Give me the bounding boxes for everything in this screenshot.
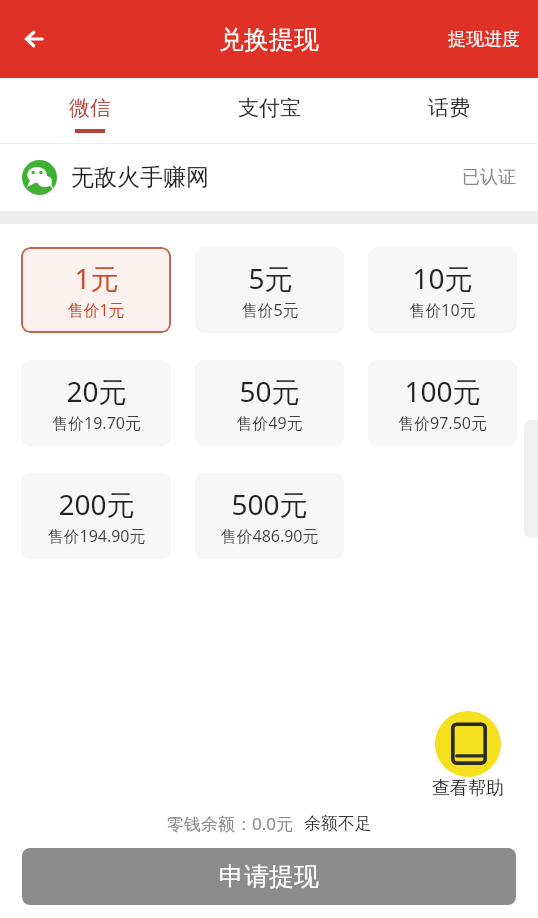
- staticText: 话费: [428, 95, 470, 121]
- button[interactable]: 查看帮助: [428, 707, 508, 804]
- button[interactable]: 1元: [21, 247, 171, 333]
- staticText: 余额不足: [304, 813, 372, 834]
- button[interactable]: 100元: [368, 360, 517, 446]
- staticText: 10元: [412, 259, 473, 297]
- staticText: 已认证: [462, 166, 516, 189]
- staticText: 5元: [248, 259, 293, 297]
- staticText: 申请提现: [219, 861, 319, 892]
- button[interactable]: 话费: [359, 78, 538, 143]
- staticText: 查看帮助: [432, 777, 504, 800]
- staticText: 提现进度: [448, 28, 520, 51]
- button[interactable]: 支付宝: [180, 78, 359, 143]
- staticText: 兑换提现: [219, 24, 319, 55]
- staticText: 50元: [239, 372, 300, 410]
- button[interactable]: Back: [8, 11, 64, 67]
- staticText: 售价19.70元: [52, 412, 141, 434]
- staticText: 100元: [404, 372, 481, 410]
- button[interactable]: 500元: [195, 473, 344, 559]
- staticText: 售价10元: [409, 299, 476, 321]
- staticText: 支付宝: [238, 95, 301, 121]
- staticText: 微信: [69, 95, 111, 121]
- staticText: 零钱余额：0.0元: [167, 812, 294, 835]
- staticText: 售价194.90元: [47, 525, 146, 547]
- staticText: 售价1元: [67, 299, 125, 321]
- button[interactable]: 提现进度: [430, 14, 538, 65]
- button[interactable]: 5元: [195, 247, 344, 333]
- staticText: 无敌火手赚网: [71, 163, 209, 192]
- button[interactable]: 申请提现: [22, 848, 516, 905]
- staticText: 1元: [74, 259, 119, 297]
- staticText: 售价486.90元: [220, 525, 319, 547]
- button[interactable]: 200元: [21, 473, 171, 559]
- staticText: 售价49元: [236, 412, 303, 434]
- staticText: 200元: [58, 485, 135, 523]
- staticText: 20元: [66, 372, 127, 410]
- button[interactable]: 无敌火手赚网: [0, 144, 538, 211]
- button[interactable]: 50元: [195, 360, 344, 446]
- staticText: 500元: [231, 485, 308, 523]
- button[interactable]: 10元: [368, 247, 517, 333]
- staticText: 售价5元: [241, 299, 299, 321]
- staticText: 售价97.50元: [398, 412, 487, 434]
- button[interactable]: 20元: [21, 360, 171, 446]
- button[interactable]: 微信: [0, 78, 180, 143]
